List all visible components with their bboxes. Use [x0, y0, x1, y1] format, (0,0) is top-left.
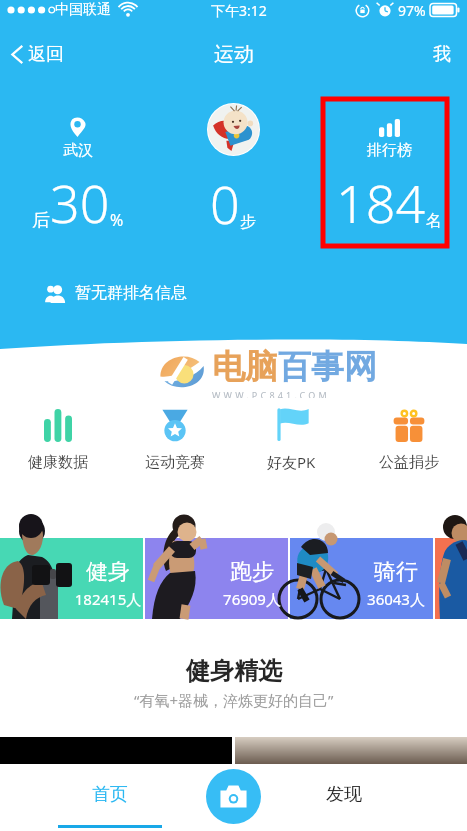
staticText: 健康数据	[28, 453, 88, 472]
staticText: 0	[210, 168, 240, 239]
button[interactable]	[145, 538, 288, 619]
staticText: 我	[433, 43, 451, 66]
staticText: WWW.PC841.COM	[212, 389, 330, 398]
staticText: 76909人	[192, 589, 312, 609]
staticText: 排行榜	[367, 141, 412, 160]
button[interactable]	[235, 737, 467, 764]
staticText: 首页	[92, 783, 128, 806]
staticText: 暂无群排名信息	[75, 283, 187, 303]
button[interactable]: 公益捐步	[350, 400, 467, 480]
staticText: 电脑	[212, 346, 278, 388]
button[interactable]: 首页	[0, 765, 220, 831]
staticText: 健身	[48, 558, 168, 586]
staticText: 30	[50, 167, 110, 238]
staticText: “有氧+器械，淬炼更好的自己”	[134, 690, 334, 710]
staticText: 武汉	[63, 141, 93, 160]
button[interactable]: 0	[155, 98, 311, 248]
staticText: 返回	[28, 43, 64, 66]
button[interactable]: 返回	[0, 35, 76, 74]
staticText: 运动竞赛	[145, 453, 205, 472]
button[interactable]: 暂无群排名信息	[0, 275, 467, 311]
staticText: 36043人	[336, 589, 456, 609]
staticText: 百事网	[278, 346, 377, 388]
button[interactable]: 发现	[220, 765, 467, 831]
staticText: 运动	[214, 42, 254, 67]
staticText: 健身精选	[186, 656, 282, 686]
button[interactable]	[290, 538, 433, 619]
staticText: 名	[426, 211, 442, 231]
staticText: 中国联通	[55, 1, 111, 19]
button[interactable]: 武汉	[0, 98, 155, 248]
staticText: 跑步	[192, 558, 312, 586]
staticText: 公益捐步	[379, 453, 439, 472]
button[interactable]: 健康数据	[0, 400, 116, 480]
button[interactable]	[435, 538, 467, 619]
staticText: 184	[336, 167, 426, 238]
staticText: 下午3:12	[211, 1, 267, 20]
staticText: 后	[32, 209, 50, 232]
button[interactable]: 排行榜	[311, 98, 467, 248]
staticText: 97%	[398, 1, 426, 20]
staticText: 骑行	[336, 558, 456, 586]
button[interactable]: 运动竞赛	[116, 400, 233, 480]
staticText: 182415人	[48, 589, 168, 609]
staticText: 好友PK	[267, 452, 316, 472]
button[interactable]: 我	[417, 33, 467, 76]
staticText: %	[110, 209, 124, 231]
staticText: 发现	[326, 783, 362, 806]
staticText: 步	[240, 212, 256, 232]
button[interactable]: Camera	[206, 769, 261, 824]
button[interactable]: 好友PK	[233, 400, 350, 480]
button[interactable]	[0, 538, 143, 619]
